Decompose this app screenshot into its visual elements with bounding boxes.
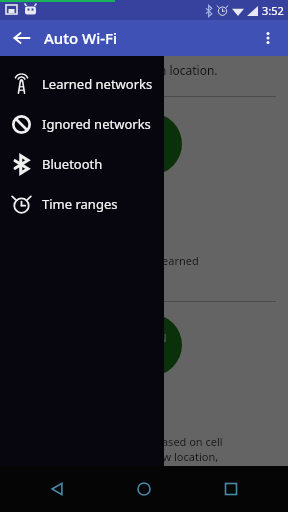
button[interactable]: Bluetooth <box>0 144 164 184</box>
button[interactable]: LEARN LOCS <box>120 314 182 376</box>
staticText: Bluetooth <box>42 155 103 173</box>
button[interactable]: Back <box>27 466 87 512</box>
staticText: Time ranges <box>42 195 118 213</box>
button[interactable]: More options <box>252 22 284 54</box>
button[interactable]: Ignored networks <box>0 104 164 144</box>
staticText: LEARN LOCS <box>135 331 167 359</box>
staticText: Use Wi-Fi when in a known location. <box>16 62 218 78</box>
staticText: Enable Wi-Fi based on auto-learned locat… <box>16 253 199 283</box>
button[interactable]: OUT <box>120 113 182 175</box>
staticText: Automatically enable Wi-Fi based on cell… <box>16 434 223 466</box>
button[interactable]: Home <box>114 466 174 512</box>
button[interactable]: Recents <box>201 466 261 512</box>
staticText: 3:52 <box>262 3 284 18</box>
button[interactable]: Learned networks <box>0 64 164 104</box>
staticText: Learned networks <box>42 75 153 93</box>
button[interactable]: Time ranges <box>0 184 164 224</box>
staticText: Ignored networks <box>42 115 151 133</box>
staticText: Auto Wi-Fi <box>44 28 117 48</box>
button[interactable]: Back <box>6 22 38 54</box>
